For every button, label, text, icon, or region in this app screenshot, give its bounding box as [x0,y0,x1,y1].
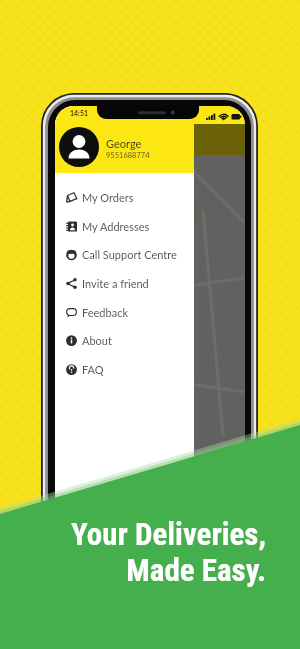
staticText: My Addresses [82,220,150,233]
staticText: Invite a friend [82,277,149,290]
staticText: Your Deliveries, [71,516,266,552]
button[interactable]: FAQ [55,355,194,383]
staticText: FAQ [82,363,104,376]
staticText: Feedback [82,306,128,319]
staticText: George [106,137,142,150]
button[interactable]: Feedback [55,298,194,326]
button[interactable]: My Addresses [55,212,194,240]
staticText: My Orders [82,191,134,204]
button[interactable]: About [55,326,194,354]
staticText: E2 Police [117,166,144,174]
staticText: About [82,334,112,347]
staticText: Made Easy. [126,552,266,588]
staticText: Red Lights Mosque [57,110,108,117]
staticText: Bosch [61,288,78,295]
button[interactable]: My Orders [55,183,194,211]
staticText: 9551688774 [106,151,150,160]
button[interactable]: Invite a friend [55,269,194,297]
staticText: ANDAPURAM [55,368,100,376]
staticText: 14:51 [70,109,89,117]
button[interactable]: Call Support Centre [55,240,194,268]
staticText: Call Support Centre [82,248,177,261]
